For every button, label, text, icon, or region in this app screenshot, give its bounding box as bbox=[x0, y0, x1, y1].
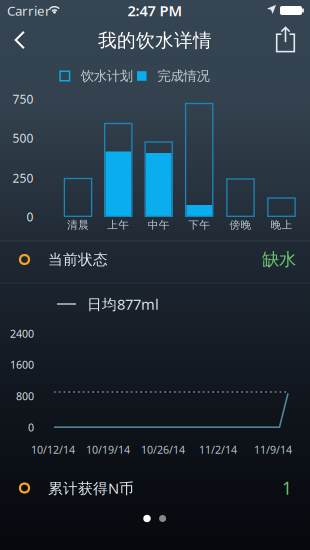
staticText: 累计获得N币 bbox=[48, 478, 134, 498]
staticText: 800 bbox=[16, 389, 34, 403]
staticText: 10/19/14 bbox=[86, 442, 130, 457]
staticText: 傍晚 bbox=[229, 218, 251, 231]
staticText: 清晨 bbox=[67, 218, 89, 231]
staticText: 我的饮水详情 bbox=[98, 29, 212, 52]
staticText: 2:47 PM bbox=[127, 1, 182, 20]
staticText: 11/2/14 bbox=[199, 442, 237, 457]
staticText: 750 bbox=[12, 91, 33, 107]
staticText: 0 bbox=[26, 209, 33, 225]
staticText: 2400 bbox=[10, 326, 34, 341]
staticText: 0 bbox=[28, 420, 34, 434]
staticText: 500 bbox=[12, 130, 33, 146]
staticText: 当前状态 bbox=[48, 250, 108, 268]
staticText: 缺水 bbox=[262, 249, 296, 270]
staticText: 晚上 bbox=[270, 218, 292, 231]
staticText: 上午 bbox=[107, 218, 129, 231]
staticText: 完成情况 bbox=[157, 68, 209, 84]
staticText: 11/9/14 bbox=[254, 442, 292, 457]
staticText: 1600 bbox=[10, 357, 34, 372]
staticText: 10/26/14 bbox=[141, 442, 185, 457]
staticText: 下午 bbox=[188, 218, 210, 231]
staticText: 中午 bbox=[148, 218, 170, 231]
staticText: 饮水计划 bbox=[81, 68, 133, 84]
staticText: 250 bbox=[12, 170, 33, 186]
staticText: 日均877ml bbox=[87, 294, 159, 314]
staticText: 10/12/14 bbox=[31, 442, 75, 457]
staticText: 1 bbox=[282, 476, 292, 499]
staticText: Carrier bbox=[7, 2, 51, 19]
